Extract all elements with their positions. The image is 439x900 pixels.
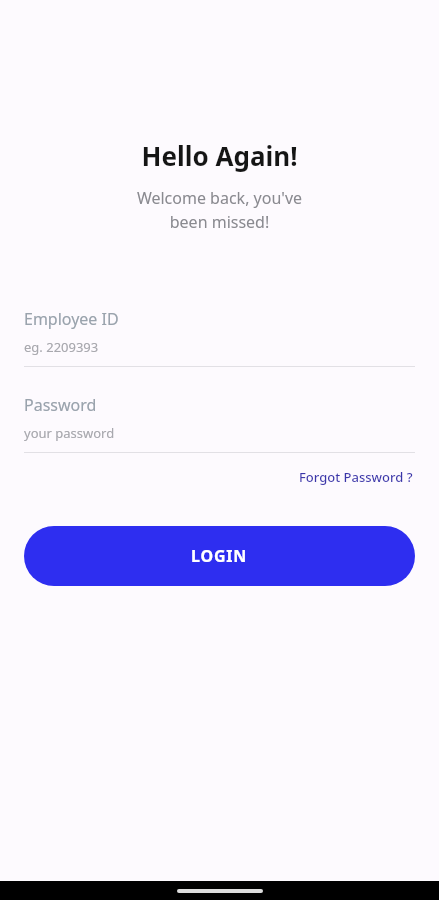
staticText: Hello Again!: [0, 138, 439, 173]
staticText: LOGIN: [191, 545, 248, 567]
button[interactable]: Employee ID: [24, 308, 415, 367]
staticText: Forgot Password ?: [299, 468, 413, 486]
staticText: Employee ID: [24, 308, 119, 330]
staticText: your password: [24, 424, 115, 442]
staticText: Password: [24, 394, 97, 416]
button[interactable]: Forgot Password ?: [297, 465, 415, 489]
staticText: eg. 2209393: [24, 338, 99, 356]
other: Home gesture bar: [177, 889, 263, 893]
button[interactable]: LOGIN: [24, 526, 415, 586]
button[interactable]: Password: [24, 394, 415, 453]
staticText: Welcome back, you've been missed!: [0, 187, 439, 233]
